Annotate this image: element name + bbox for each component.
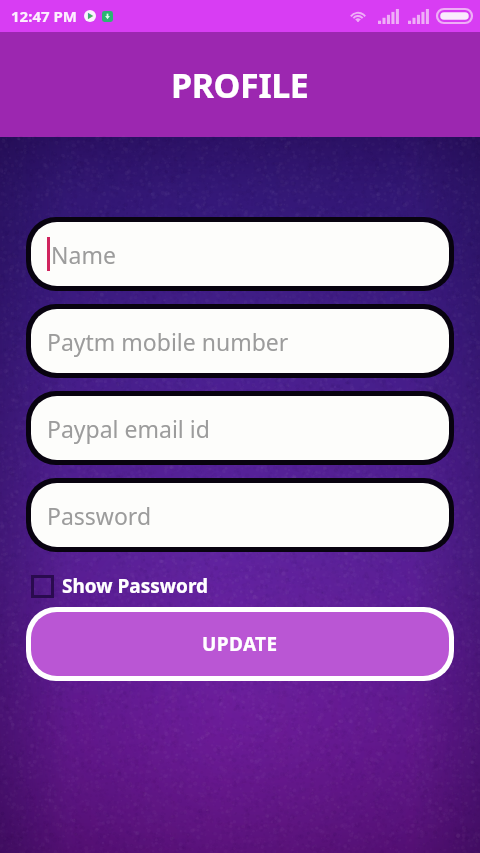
staticText: Password [47, 500, 152, 531]
staticText: PROFILE [171, 62, 309, 108]
staticText: Paypal email id [47, 413, 210, 444]
button[interactable]: Password [31, 483, 449, 547]
button[interactable]: Name [31, 222, 449, 286]
button[interactable]: UPDATE [31, 612, 449, 676]
staticText: UPDATE [202, 631, 278, 657]
staticText: Name [51, 239, 116, 270]
staticText: Paytm mobile number [47, 326, 289, 357]
button[interactable]: Paypal email id [31, 396, 449, 460]
staticText: Show Password [62, 573, 209, 599]
button[interactable]: Show Password [26, 573, 209, 599]
button[interactable]: Paytm mobile number [31, 309, 449, 373]
staticText: 12:47 PM [11, 6, 77, 26]
